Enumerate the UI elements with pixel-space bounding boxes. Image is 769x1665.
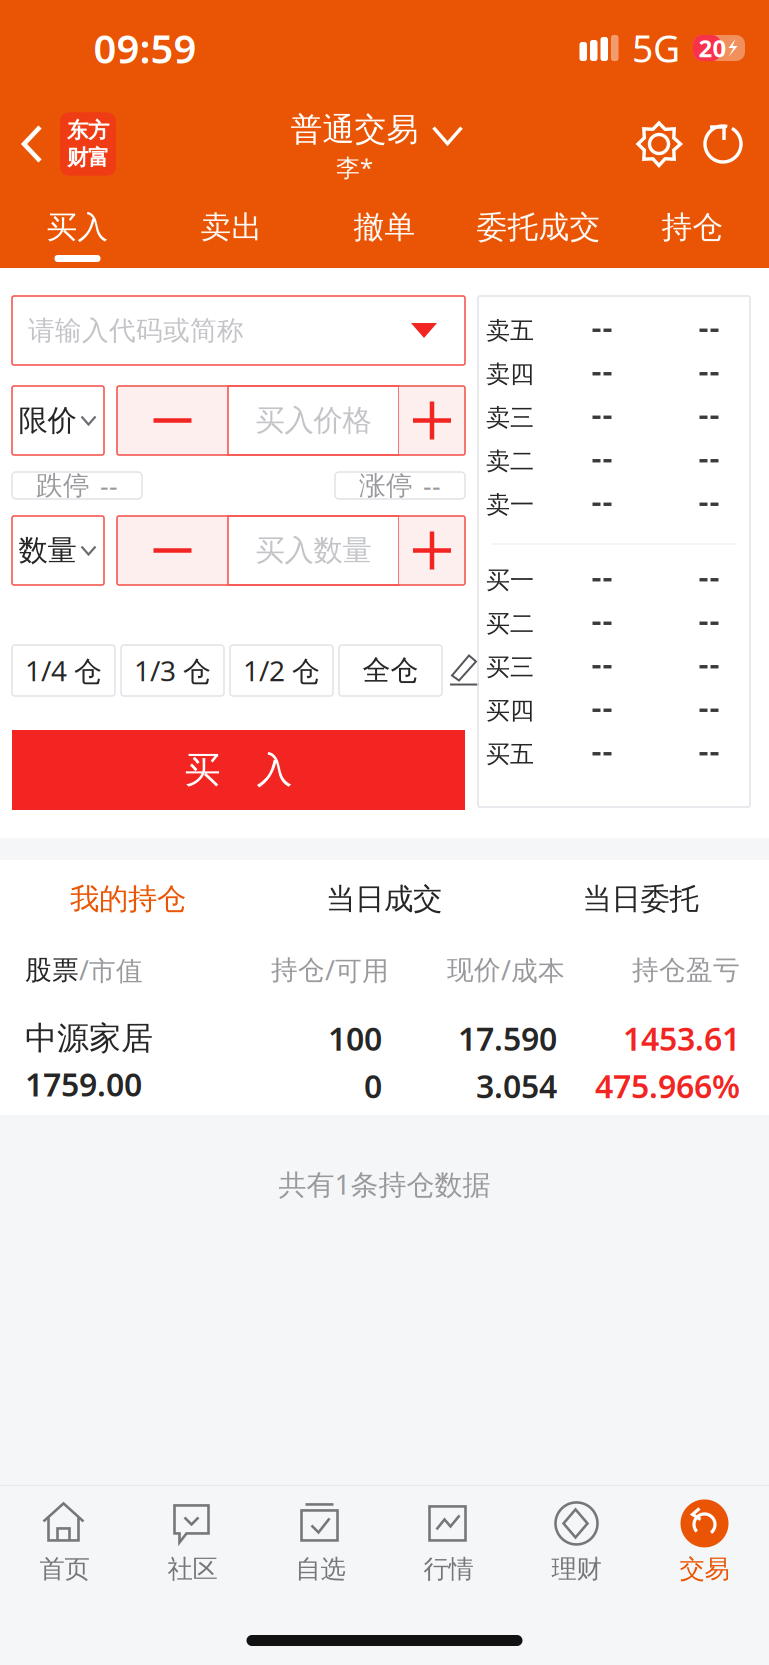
staticText: 财富: [67, 144, 109, 171]
staticText: /可用: [325, 952, 389, 988]
button[interactable]: 卖出: [155, 192, 308, 268]
button[interactable]: Decrease: [117, 386, 228, 455]
staticText: 请输入代码或简称: [28, 314, 244, 347]
staticText: 全仓: [362, 653, 418, 688]
staticText: 卖四: [486, 359, 534, 389]
staticText: 首页: [39, 1553, 89, 1584]
button[interactable]: Back: [0, 96, 116, 192]
staticText: 买入: [46, 208, 108, 246]
button[interactable]: 理财: [512, 1486, 640, 1598]
staticText: 20: [698, 32, 726, 64]
button[interactable]: 数量: [12, 516, 104, 585]
button[interactable]: Settings: [635, 120, 683, 168]
staticText: 5G: [632, 23, 680, 73]
staticText: 1/2 仓: [243, 652, 320, 689]
button[interactable]: 我的持仓: [0, 860, 256, 938]
staticText: 限价: [18, 402, 76, 438]
staticText: 当日成交: [326, 881, 442, 917]
staticText: 1453.61: [623, 1017, 740, 1059]
staticText: 卖一: [486, 490, 534, 519]
button[interactable]: 行情: [384, 1486, 512, 1598]
button[interactable]: 委托成交: [461, 192, 616, 268]
staticText: 数量: [18, 532, 76, 568]
staticText: 卖五: [486, 316, 534, 345]
staticText: 1/4 仓: [25, 652, 102, 689]
staticText: 475.966%: [595, 1064, 740, 1107]
staticText: 涨停: [359, 469, 413, 502]
button[interactable]: 社区: [128, 1486, 256, 1598]
button[interactable]: 中源家居: [0, 1018, 769, 1106]
button[interactable]: 持仓: [616, 192, 769, 268]
staticText: 买二: [486, 609, 534, 638]
staticText: 李*: [336, 151, 373, 183]
staticText: 卖出: [200, 208, 262, 246]
button[interactable]: 买入: [0, 192, 155, 268]
button[interactable]: 限价: [12, 386, 104, 455]
staticText: 买三: [486, 652, 534, 682]
staticText: 交易: [679, 1553, 729, 1584]
button[interactable]: 自选: [256, 1486, 384, 1598]
button[interactable]: 1/4 仓: [12, 645, 115, 696]
staticText: 撤单: [353, 208, 415, 246]
staticText: --: [100, 468, 118, 503]
staticText: 卖二: [486, 446, 534, 476]
staticText: 100: [328, 1017, 382, 1059]
staticText: 买五: [486, 739, 534, 769]
button[interactable]: Decrease: [117, 516, 228, 585]
staticText: 社区: [167, 1553, 217, 1584]
staticText: 买入价格: [255, 402, 371, 438]
button[interactable]: 全仓: [339, 645, 442, 696]
staticText: 持仓: [271, 954, 325, 986]
staticText: 自选: [295, 1553, 345, 1584]
staticText: 现价: [447, 954, 501, 986]
button[interactable]: Increase: [399, 386, 465, 455]
staticText: 普通交易: [290, 110, 418, 149]
staticText: 委托成交: [476, 208, 600, 246]
staticText: 1759.00: [25, 1063, 142, 1105]
button[interactable]: Increase: [399, 516, 465, 585]
button[interactable]: Refresh: [699, 118, 747, 170]
button[interactable]: 买 入: [12, 730, 465, 810]
staticText: 持仓: [661, 208, 723, 246]
staticText: 买入数量: [255, 532, 371, 568]
button[interactable]: 首页: [0, 1486, 128, 1598]
staticText: 买 入: [184, 748, 292, 792]
button[interactable]: 1/3 仓: [121, 645, 224, 696]
button[interactable]: 撤单: [308, 192, 461, 268]
staticText: 我的持仓: [70, 881, 186, 917]
staticText: 卖三: [486, 403, 534, 432]
staticText: 0: [364, 1064, 382, 1107]
staticText: 3.054: [476, 1064, 557, 1107]
staticText: 理财: [551, 1553, 601, 1584]
button[interactable]: 当日委托: [512, 860, 769, 938]
staticText: 跌停: [36, 469, 90, 502]
button[interactable]: 交易: [640, 1486, 768, 1598]
staticText: 股票: [25, 954, 79, 986]
staticText: 买一: [486, 565, 534, 595]
staticText: 09:59: [93, 21, 196, 74]
staticText: 东方: [67, 117, 109, 143]
staticText: 持仓盈亏: [632, 954, 740, 986]
staticText: 中源家居: [25, 1019, 153, 1058]
staticText: 当日委托: [582, 881, 698, 917]
staticText: 共有1条持仓数据: [278, 1165, 490, 1203]
staticText: /市值: [79, 952, 143, 988]
staticText: 17.590: [458, 1017, 557, 1059]
button[interactable]: 当日成交: [256, 860, 512, 938]
button[interactable]: 普通交易: [287, 96, 463, 192]
staticText: /成本: [501, 952, 565, 988]
staticText: 行情: [423, 1553, 473, 1584]
staticText: --: [423, 468, 441, 503]
staticText: 买四: [486, 696, 534, 725]
button[interactable]: 1/2 仓: [230, 645, 333, 696]
button[interactable]: Edit: [448, 651, 482, 689]
staticText: 1/3 仓: [134, 652, 211, 689]
